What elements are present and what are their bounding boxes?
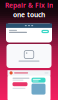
staticText: one touch [13, 10, 45, 19]
staticText: Repair & Fix in [5, 1, 53, 10]
